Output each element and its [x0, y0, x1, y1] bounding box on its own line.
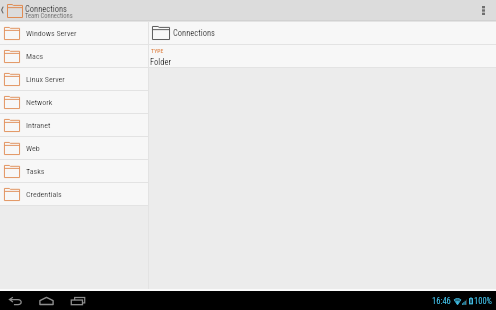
button[interactable]: Recent apps	[71, 297, 85, 305]
staticText: Network	[26, 98, 53, 107]
other: Navigate up	[0, 0, 6, 20]
button[interactable]: More options	[474, 0, 496, 20]
button[interactable]: Network	[0, 91, 148, 114]
button[interactable]: Windows Server	[0, 22, 148, 45]
button[interactable]: Credentials	[0, 183, 148, 206]
staticText: TYPE	[151, 48, 164, 55]
staticText: Credentials	[26, 190, 62, 199]
staticText: Intranet	[26, 121, 51, 130]
button[interactable]: Macs	[0, 45, 148, 68]
button[interactable]: Web	[0, 137, 148, 160]
staticText: Macs	[26, 52, 44, 61]
staticText: Windows Server	[26, 29, 77, 38]
staticText: 16:46	[432, 296, 451, 306]
button[interactable]: TYPE	[149, 45, 496, 67]
staticText: Connections	[25, 4, 67, 14]
button[interactable]: Home	[39, 297, 54, 305]
staticText: Tasks	[26, 167, 45, 176]
button[interactable]: Intranet	[0, 114, 148, 137]
staticText: Team Connections	[25, 12, 73, 20]
staticText: 100%	[474, 296, 492, 306]
staticText: Folder	[150, 57, 172, 67]
button[interactable]: Tasks	[0, 160, 148, 183]
button[interactable]: Connections	[149, 22, 496, 44]
staticText: Web	[26, 144, 40, 153]
button[interactable]: Navigate up	[0, 0, 77, 20]
button[interactable]: Linux Server	[0, 68, 148, 91]
staticText: Connections	[173, 28, 215, 38]
button[interactable]: Back	[9, 297, 22, 305]
staticText: Linux Server	[26, 75, 65, 84]
